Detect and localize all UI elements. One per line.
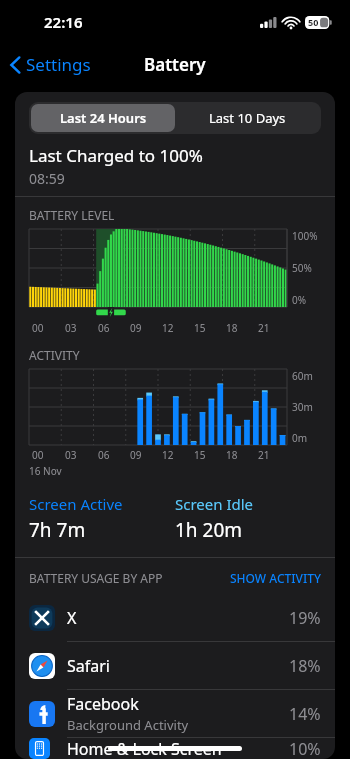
button[interactable]: Last 24 Hours [31, 104, 175, 132]
staticText: Last 10 Days [209, 109, 286, 127]
staticText: 12 [162, 321, 174, 335]
staticText: X [67, 607, 77, 629]
staticText: Battery [144, 53, 206, 76]
staticText: 14% [289, 703, 321, 725]
staticText: 00 [32, 448, 44, 462]
staticText: 18 [226, 448, 238, 462]
staticText: 06 [98, 448, 110, 462]
staticText: 12 [162, 448, 174, 462]
button[interactable]: SHOW ACTIVITY [230, 570, 321, 586]
staticText: BATTERY USAGE BY APP [29, 570, 163, 586]
staticText: 18 [226, 321, 238, 335]
staticText: 21 [258, 448, 270, 462]
staticText: 15 [194, 321, 206, 335]
staticText: 00 [32, 321, 44, 335]
staticText: Screen Idle [175, 494, 254, 514]
staticText: 100% [292, 229, 318, 243]
staticText: ACTIVITY [29, 347, 80, 363]
staticText: 22:16 [44, 12, 83, 32]
staticText: 09 [130, 448, 142, 462]
staticText: 16 Nov [29, 464, 62, 478]
staticText: Safari [67, 655, 110, 677]
staticText: 09 [130, 321, 142, 335]
staticText: 0m [292, 431, 308, 445]
staticText: 03 [65, 448, 77, 462]
staticText: 18% [289, 655, 321, 677]
staticText: 08:59 [29, 169, 65, 188]
staticText: Settings [26, 53, 91, 76]
staticText: Background Activity [67, 716, 189, 734]
staticText: Home & Lock Screen [67, 738, 222, 759]
staticText: Last 24 Hours [60, 109, 147, 127]
staticText: 03 [65, 321, 77, 335]
staticText: 60m [292, 369, 313, 383]
button[interactable]: Safari [15, 642, 335, 689]
staticText: SHOW ACTIVITY [230, 570, 321, 586]
staticText: 15 [194, 448, 206, 462]
button[interactable]: Facebook [15, 690, 335, 737]
staticText: BATTERY LEVEL [29, 207, 115, 223]
staticText: Screen Active [29, 494, 123, 514]
staticText: 7h 7m [29, 517, 86, 543]
staticText: Facebook [67, 693, 139, 715]
button[interactable]: X [15, 594, 335, 641]
button[interactable]: Home & Lock Screen [15, 738, 335, 759]
staticText: 1h 20m [175, 517, 243, 543]
button[interactable]: Last 10 Days [175, 104, 319, 132]
staticText: 50% [292, 261, 312, 275]
staticText: 06 [98, 321, 110, 335]
staticText: Last Charged to 100% [29, 144, 203, 167]
staticText: 10% [289, 738, 321, 759]
staticText: 21 [258, 321, 270, 335]
button[interactable]: Settings [0, 49, 99, 80]
staticText: 19% [289, 607, 321, 629]
staticText: 30m [292, 400, 313, 414]
staticText: 50 [308, 16, 319, 28]
staticText: 0% [292, 293, 307, 307]
